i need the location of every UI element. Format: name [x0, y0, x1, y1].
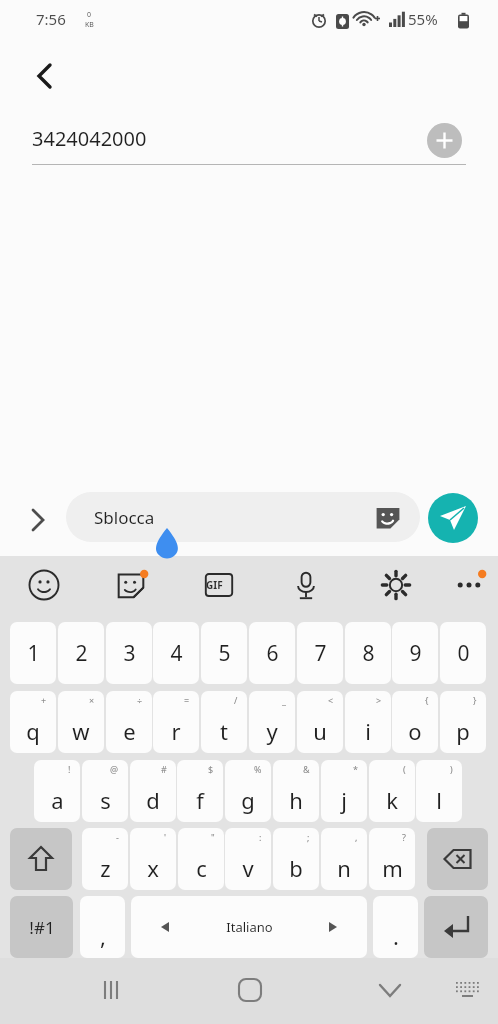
staticText: ! — [68, 763, 71, 775]
staticText: GIF — [206, 578, 223, 592]
button[interactable]: Add recipient — [427, 123, 462, 158]
button[interactable]: Send — [428, 493, 478, 543]
staticText: # — [161, 763, 167, 775]
button[interactable]: ' — [130, 828, 176, 890]
button[interactable]: Stickers — [373, 502, 403, 532]
staticText: z — [100, 853, 111, 883]
button[interactable]: _ — [249, 691, 295, 753]
button[interactable]: . — [373, 896, 418, 958]
button[interactable]: 4 — [153, 622, 199, 684]
button[interactable]: Hide keyboard — [364, 966, 416, 1014]
staticText: j — [341, 785, 347, 815]
button[interactable]: 0 — [440, 622, 486, 684]
button[interactable]: / — [201, 691, 247, 753]
staticText: ) — [450, 763, 453, 775]
button[interactable]: 1 — [10, 622, 56, 684]
button[interactable]: Recents — [85, 966, 137, 1014]
button[interactable]: , — [80, 896, 125, 958]
button[interactable]: # — [130, 760, 176, 822]
staticText: i — [365, 716, 371, 746]
staticText: n — [337, 853, 351, 883]
staticText: } — [473, 694, 477, 706]
button[interactable]: & — [273, 760, 319, 822]
button[interactable]: : — [225, 828, 271, 890]
button[interactable]: 2 — [58, 622, 104, 684]
staticText: = — [184, 694, 190, 706]
button[interactable]: Shift — [10, 828, 72, 890]
button[interactable]: Stickers — [109, 563, 153, 607]
button[interactable]: " — [178, 828, 224, 890]
staticText: @ — [110, 763, 119, 775]
button[interactable]: $ — [177, 760, 223, 822]
button[interactable]: Enter — [424, 896, 488, 958]
staticText: > — [376, 694, 382, 706]
staticText: . — [393, 921, 399, 951]
button[interactable]: + — [10, 691, 56, 753]
button[interactable]: * — [321, 760, 367, 822]
button[interactable]: 5 — [201, 622, 247, 684]
staticText: e — [123, 716, 136, 746]
button[interactable]: More options — [447, 563, 491, 607]
button[interactable]: < — [297, 691, 343, 753]
staticText: " — [211, 831, 215, 843]
staticText: 55% — [408, 9, 438, 29]
button[interactable]: % — [225, 760, 271, 822]
button[interactable]: { — [392, 691, 438, 753]
button[interactable]: ÷ — [106, 691, 152, 753]
staticText: g — [241, 785, 255, 815]
staticText: $ — [208, 763, 214, 775]
staticText: + — [41, 694, 47, 706]
staticText: % — [254, 763, 262, 775]
button[interactable]: 9 — [392, 622, 438, 684]
staticText: m — [382, 853, 403, 883]
staticText: 0 — [457, 639, 470, 668]
button[interactable]: Home — [224, 966, 276, 1014]
staticText: b — [289, 853, 303, 883]
staticText: o — [408, 716, 422, 746]
button[interactable]: ; — [273, 828, 319, 890]
button[interactable]: > — [345, 691, 391, 753]
button[interactable]: Backspace — [427, 828, 488, 890]
staticText: ? — [402, 831, 406, 843]
button[interactable]: Sblocca — [66, 492, 420, 542]
button[interactable]: × — [58, 691, 104, 753]
button[interactable]: ( — [369, 760, 415, 822]
button[interactable]: Settings — [374, 563, 418, 607]
button[interactable]: } — [440, 691, 486, 753]
button[interactable]: Emoji — [22, 563, 66, 607]
staticText: 3424042000 — [32, 125, 147, 152]
button[interactable]: - — [82, 828, 128, 890]
button[interactable]: , — [321, 828, 367, 890]
button[interactable]: ) — [416, 760, 462, 822]
staticText: , — [100, 921, 106, 951]
staticText: d — [146, 785, 160, 815]
button[interactable]: 8 — [345, 622, 391, 684]
button[interactable]: = — [153, 691, 199, 753]
staticText: * — [353, 763, 358, 775]
button[interactable]: 6 — [249, 622, 295, 684]
button[interactable]: @ — [82, 760, 128, 822]
staticText: p — [456, 716, 470, 746]
staticText: w — [72, 716, 90, 746]
button[interactable]: GIF — [197, 563, 241, 607]
button[interactable]: 7 — [297, 622, 343, 684]
staticText: 0 — [87, 10, 92, 20]
staticText: 1 — [27, 639, 40, 668]
staticText: KB — [85, 20, 94, 30]
staticText: : — [259, 831, 262, 843]
button[interactable]: Voice input — [284, 563, 328, 607]
staticText: ÷ — [137, 694, 143, 706]
button[interactable]: Italiano — [131, 896, 367, 958]
staticText: r — [171, 716, 181, 746]
button[interactable]: ! — [34, 760, 80, 822]
button[interactable]: Back — [16, 48, 72, 104]
button[interactable]: !#1 — [10, 896, 73, 958]
staticText: 2 — [75, 639, 88, 668]
button[interactable]: Switch keyboard — [441, 966, 493, 1014]
staticText: & — [303, 763, 310, 775]
button[interactable]: 3 — [106, 622, 152, 684]
staticText: y — [266, 716, 278, 746]
button[interactable]: ? — [369, 828, 415, 890]
staticText: , — [355, 831, 358, 843]
button[interactable]: Expand — [16, 498, 60, 542]
